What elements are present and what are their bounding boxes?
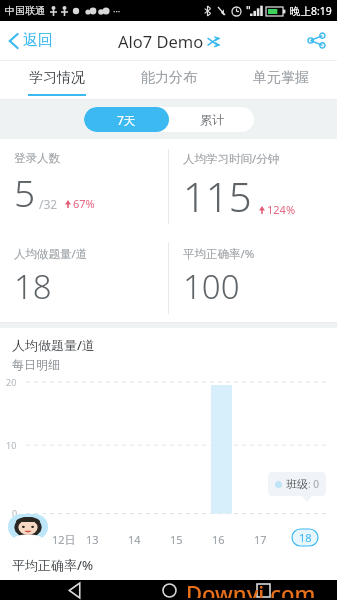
- staticText: 124%: [267, 202, 296, 217]
- staticText: 67%: [73, 196, 95, 211]
- staticText: 单元掌握: [253, 69, 309, 87]
- staticText: 18: [14, 264, 52, 309]
- staticText: 晚上8:19: [290, 4, 332, 18]
- staticText: 平均正确率/%: [183, 246, 255, 262]
- staticText: 平均正确率/%: [12, 556, 94, 574]
- staticText: 15: [170, 532, 183, 547]
- staticText: 115: [183, 169, 252, 223]
- staticText: 14: [128, 532, 141, 547]
- staticText: 17: [254, 532, 267, 547]
- other: Student avatar: [8, 514, 48, 540]
- staticText: 18: [299, 530, 312, 545]
- staticText: Downyi.com: [186, 578, 316, 598]
- staticText: 5: [14, 167, 36, 217]
- staticText: 人均做题量/道: [14, 246, 88, 262]
- staticText: 100: [183, 264, 240, 309]
- button[interactable]: Recent apps: [242, 580, 284, 600]
- staticText: ···: [113, 5, 121, 17]
- button[interactable]: 单元掌握: [225, 61, 337, 99]
- staticText: Alo7 Demo: [118, 30, 204, 52]
- staticText: 12日: [52, 532, 76, 547]
- button[interactable]: 返回: [0, 25, 61, 56]
- staticText: 返回: [23, 31, 53, 50]
- button[interactable]: Share: [296, 24, 337, 57]
- staticText: 人均学习时间/分钟: [183, 151, 280, 167]
- staticText: 10: [6, 439, 17, 451]
- staticText: 学习情况: [29, 69, 85, 87]
- staticText: 中国联通: [5, 4, 45, 17]
- staticText: 人均做题量/道: [12, 336, 96, 354]
- staticText: 班级: [286, 477, 308, 491]
- staticText: 20: [6, 376, 17, 388]
- button[interactable]: 学习情况: [0, 61, 113, 99]
- button[interactable]: Back: [53, 580, 95, 600]
- staticText: 能力分布: [141, 69, 197, 87]
- staticText: 13: [86, 532, 99, 547]
- staticText: /32: [39, 196, 58, 212]
- button[interactable]: Home: [148, 580, 190, 600]
- staticText: 0: [12, 507, 18, 519]
- staticText: 每日明细: [12, 357, 60, 372]
- staticText: 累计: [200, 112, 224, 127]
- staticText: 登录人数: [14, 151, 60, 165]
- button[interactable]: 18: [292, 529, 318, 546]
- button[interactable]: 7天: [84, 107, 169, 132]
- staticText: 16: [212, 532, 225, 547]
- button[interactable]: 累计: [169, 107, 254, 132]
- button[interactable]: 能力分布: [113, 61, 225, 99]
- staticText: : 0: [308, 477, 319, 491]
- staticText: 7天: [117, 112, 136, 128]
